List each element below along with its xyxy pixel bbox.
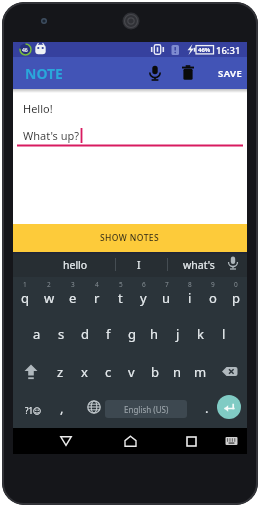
staticText: z [57, 363, 64, 381]
button[interactable]: I [114, 252, 164, 277]
staticText: s [58, 325, 65, 343]
button[interactable] [141, 59, 169, 87]
button[interactable]: h [143, 315, 166, 353]
staticText: , [60, 399, 64, 417]
staticText: ?1☺ [25, 405, 42, 416]
staticText: n [173, 363, 182, 381]
staticText: h [150, 325, 159, 343]
staticText: 9 [211, 280, 215, 289]
button[interactable]: 6 [132, 277, 155, 315]
staticText: e [69, 289, 77, 307]
button[interactable] [178, 428, 204, 454]
staticText: f [106, 325, 111, 343]
staticText: 2 [47, 280, 51, 289]
staticText: p [232, 289, 240, 307]
staticText: 16:31 [216, 44, 241, 57]
staticText: g [128, 325, 136, 343]
button[interactable]: 4 [85, 277, 109, 315]
staticText: 46% [198, 46, 211, 54]
button[interactable]: 9 [201, 277, 224, 315]
staticText: 0 [234, 280, 238, 289]
button[interactable]: j [166, 315, 189, 353]
button[interactable]: n [166, 353, 189, 391]
staticText: m [194, 363, 207, 381]
button[interactable]: 7 [155, 277, 178, 315]
button[interactable]: g [120, 315, 143, 353]
staticText: k [197, 325, 204, 343]
button[interactable] [212, 353, 247, 391]
button[interactable] [117, 428, 143, 454]
staticText: i [188, 289, 192, 307]
staticText: d [81, 325, 89, 343]
button[interactable]: x [72, 353, 96, 391]
staticText: SHOW NOTES [100, 232, 160, 244]
staticText: v [128, 363, 135, 381]
staticText: I [137, 258, 141, 272]
staticText: q [21, 289, 29, 307]
button[interactable]: 5 [109, 277, 132, 315]
button[interactable]: a [25, 315, 49, 353]
staticText: 8 [188, 280, 192, 289]
button[interactable]: 8 [178, 277, 201, 315]
staticText: 1 [23, 280, 27, 289]
staticText: t [118, 289, 123, 307]
button[interactable]: z [48, 353, 72, 391]
staticText: o [209, 289, 217, 307]
staticText: . [205, 399, 209, 417]
staticText: j [176, 325, 180, 343]
staticText: a [33, 325, 41, 343]
staticText: w [44, 289, 55, 307]
button[interactable]: 2 [37, 277, 61, 315]
button[interactable] [87, 400, 101, 414]
staticText: y [140, 289, 147, 307]
staticText: l [222, 325, 226, 343]
staticText: c [105, 363, 112, 381]
staticText: 5 [119, 280, 123, 289]
button[interactable]: , [47, 391, 77, 425]
button[interactable]: hello [43, 252, 107, 277]
button[interactable]: SHOW NOTES [13, 224, 247, 252]
button[interactable]: what's [167, 252, 231, 277]
staticText: 3 [71, 280, 75, 289]
staticText: x [81, 363, 88, 381]
button[interactable]: 3 [61, 277, 85, 315]
staticText: 7 [165, 280, 169, 289]
staticText: what's [183, 258, 215, 272]
button[interactable] [219, 428, 243, 452]
button[interactable]: 0 [224, 277, 247, 315]
staticText: 4 [95, 280, 99, 289]
staticText: r [94, 289, 100, 307]
button[interactable]: . [193, 391, 221, 425]
staticText: What's up? [23, 128, 80, 143]
button[interactable]: v [120, 353, 143, 391]
button[interactable] [217, 395, 241, 419]
button[interactable]: SAVE [211, 57, 249, 89]
staticText: hello [63, 258, 88, 272]
button[interactable] [174, 59, 202, 87]
staticText: u [162, 289, 171, 307]
button[interactable]: l [212, 315, 235, 353]
button[interactable]: ?1☺ [17, 395, 49, 425]
staticText: 6 [142, 280, 146, 289]
staticText: 46 [22, 47, 28, 54]
button[interactable] [53, 428, 79, 454]
button[interactable]: English (US) [105, 400, 187, 418]
button[interactable]: f [97, 315, 120, 353]
button[interactable]: b [143, 353, 166, 391]
button[interactable]: 1 [13, 277, 37, 315]
button[interactable]: k [189, 315, 212, 353]
button[interactable]: s [49, 315, 73, 353]
staticText: Hello! [23, 101, 53, 116]
button[interactable]: c [96, 353, 120, 391]
button[interactable]: d [73, 315, 97, 353]
staticText: English (US) [124, 404, 169, 415]
staticText: SAVE [218, 67, 243, 80]
staticText: b [151, 363, 159, 381]
button[interactable] [13, 353, 48, 391]
staticText: NOTE [25, 64, 63, 83]
button[interactable]: m [189, 353, 212, 391]
